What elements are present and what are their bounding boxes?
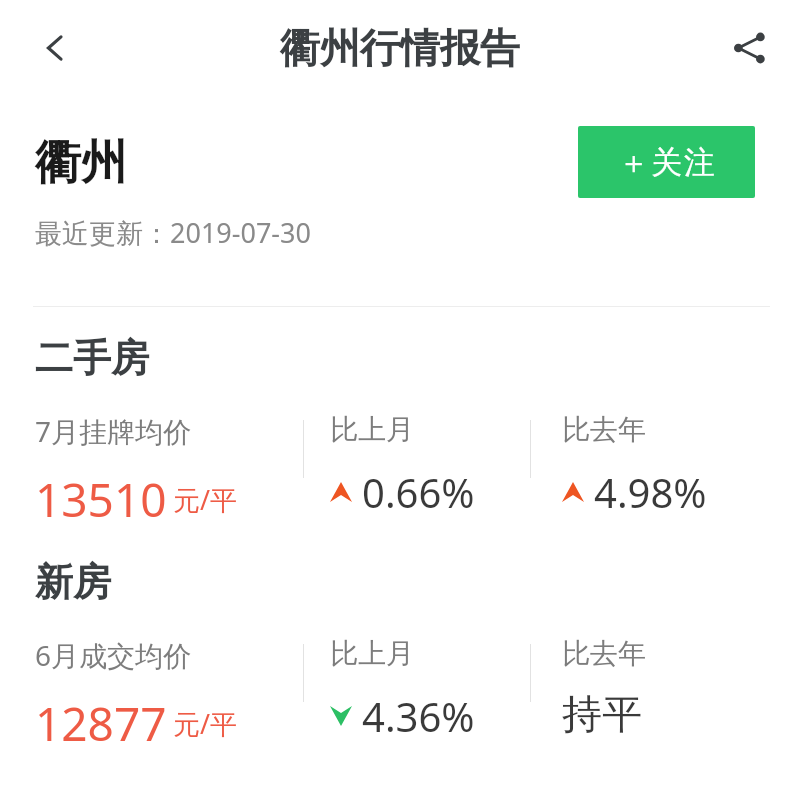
button[interactable]: Back (22, 15, 88, 81)
staticText: 新房 (35, 558, 111, 606)
staticText: 比上月 (330, 636, 414, 671)
staticText: 13510 (35, 468, 167, 522)
staticText: 元/平 (173, 705, 238, 742)
staticText: 二手房 (35, 334, 149, 382)
staticText: 元/平 (173, 481, 238, 518)
staticText: 比去年 (562, 412, 646, 447)
staticText: 7月挂牌均价 (35, 412, 192, 450)
button[interactable]: ＋关注 (578, 126, 755, 198)
staticText: 衢州 (35, 134, 127, 192)
staticText: 4.36% (362, 689, 475, 743)
staticText: 衢州行情报告 (280, 23, 520, 73)
staticText: 6月成交均价 (35, 636, 192, 674)
staticText: 4.98% (594, 465, 707, 519)
button[interactable]: Share (716, 15, 782, 81)
staticText: 比去年 (562, 636, 646, 671)
staticText: 持平 (562, 689, 642, 739)
staticText: ＋关注 (617, 143, 716, 182)
staticText: 最近更新：2019-07-30 (35, 214, 311, 251)
staticText: 12877 (35, 692, 167, 746)
staticText: 比上月 (330, 412, 414, 447)
staticText: 0.66% (362, 465, 475, 519)
